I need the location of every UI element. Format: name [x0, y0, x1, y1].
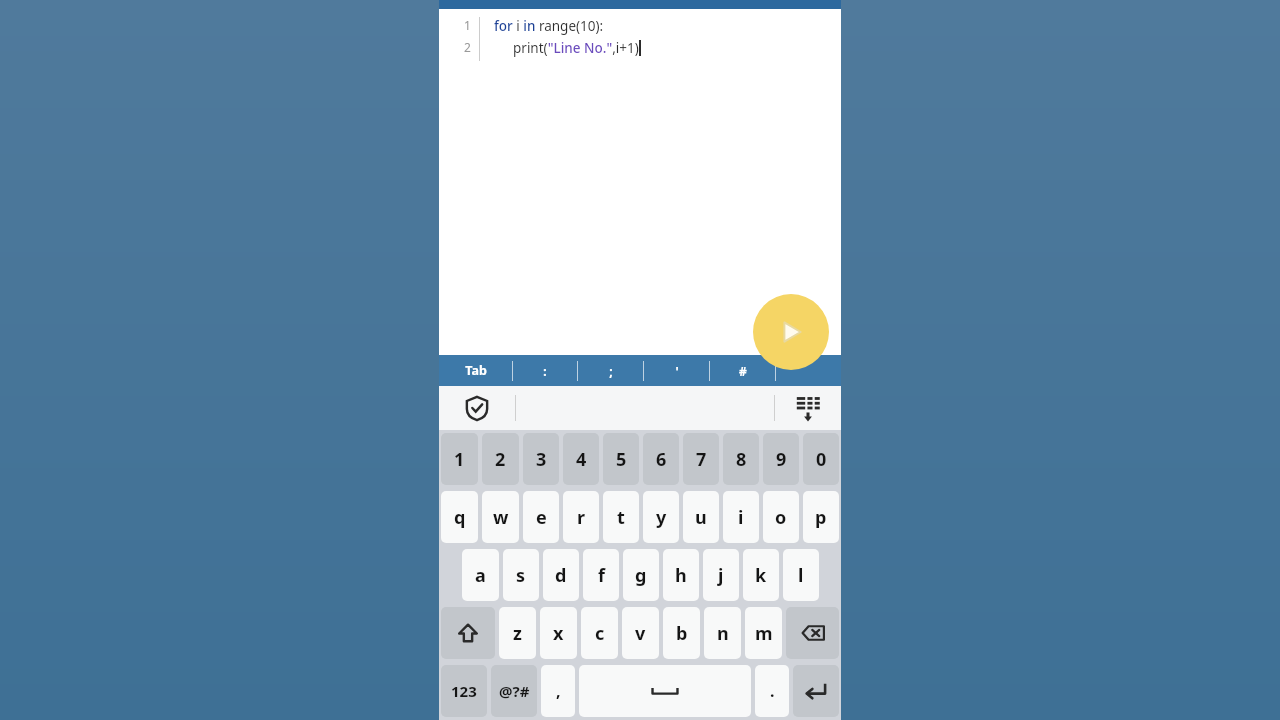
staticText: x — [553, 621, 564, 646]
button[interactable]: k — [743, 549, 779, 601]
button[interactable]: b — [663, 607, 700, 659]
button[interactable]: 9 — [763, 433, 799, 485]
button[interactable]: e — [523, 491, 559, 543]
button[interactable]: Enter — [793, 665, 839, 717]
button[interactable]: n — [704, 607, 741, 659]
staticText: y — [656, 505, 667, 530]
button[interactable]: p — [803, 491, 839, 543]
button[interactable]: Privacy — [439, 386, 515, 430]
button[interactable]: v — [622, 607, 659, 659]
staticText: 9 — [776, 447, 787, 472]
button[interactable] — [776, 355, 841, 386]
staticText: 3 — [536, 447, 547, 472]
button[interactable]: y — [643, 491, 679, 543]
staticText: j — [718, 563, 724, 588]
button[interactable]: z — [499, 607, 536, 659]
button[interactable]: ; — [578, 355, 643, 386]
button[interactable]: Hide keyboard — [775, 386, 841, 430]
staticText: i — [738, 505, 744, 530]
button[interactable]: j — [703, 549, 739, 601]
staticText: t — [617, 505, 625, 530]
button[interactable]: 0 — [803, 433, 839, 485]
staticText: p — [815, 505, 827, 530]
button[interactable]: 3 — [523, 433, 559, 485]
button[interactable]: @?# — [491, 665, 537, 717]
button[interactable]: 4 — [563, 433, 599, 485]
button[interactable]: ' — [644, 355, 709, 386]
staticText: 2 — [495, 447, 506, 472]
button[interactable]: Shift — [441, 607, 495, 659]
staticText: f — [598, 563, 605, 588]
staticText: k — [755, 563, 767, 588]
button[interactable]: c — [581, 607, 618, 659]
button[interactable]: , — [541, 665, 575, 717]
staticText: 1 — [454, 447, 465, 472]
staticText: Tab — [465, 362, 487, 379]
button[interactable]: t — [603, 491, 639, 543]
button[interactable]: w — [482, 491, 519, 543]
staticText: e — [536, 505, 547, 530]
button[interactable]: 1 — [441, 433, 478, 485]
staticText: 8 — [736, 447, 747, 472]
staticText: , — [556, 680, 561, 702]
button[interactable]: 123 — [441, 665, 487, 717]
staticText: g — [635, 563, 647, 588]
button[interactable]: s — [503, 549, 539, 601]
staticText: ; — [609, 363, 613, 379]
button[interactable]: 5 — [603, 433, 639, 485]
staticText: # — [739, 363, 747, 379]
staticText: q — [454, 505, 466, 530]
button[interactable]: a — [462, 549, 499, 601]
button[interactable]: m — [745, 607, 782, 659]
staticText: . — [770, 680, 775, 702]
staticText: z — [513, 621, 522, 646]
button[interactable]: r — [563, 491, 599, 543]
button[interactable]: x — [540, 607, 577, 659]
button[interactable]: g — [623, 549, 659, 601]
staticText: m — [755, 621, 773, 646]
staticText: 123 — [451, 681, 477, 701]
staticText: n — [717, 621, 729, 646]
button[interactable]: Backspace — [786, 607, 839, 659]
button[interactable]: # — [710, 355, 775, 386]
staticText: l — [798, 563, 804, 588]
button[interactable]: o — [763, 491, 799, 543]
staticText: 4 — [576, 447, 587, 472]
button[interactable]: u — [683, 491, 719, 543]
staticText: c — [595, 621, 605, 646]
staticText: 2 — [464, 39, 471, 55]
staticText: for i in range(10): — [494, 17, 604, 35]
staticText: w — [493, 505, 509, 530]
button[interactable]: i — [723, 491, 759, 543]
button[interactable]: 8 — [723, 433, 759, 485]
staticText: 5 — [616, 447, 627, 472]
button[interactable]: f — [583, 549, 619, 601]
staticText: 0 — [816, 447, 827, 472]
button[interactable]: 2 — [482, 433, 519, 485]
button[interactable]: 7 — [683, 433, 719, 485]
staticText: b — [676, 621, 688, 646]
staticText: 6 — [656, 447, 667, 472]
button[interactable]: h — [663, 549, 699, 601]
staticText: a — [475, 563, 486, 588]
button[interactable]: l — [783, 549, 819, 601]
button[interactable]: d — [543, 549, 579, 601]
staticText: v — [635, 621, 646, 646]
button[interactable]: Run — [753, 294, 829, 370]
staticText: s — [516, 563, 526, 588]
button[interactable]: 6 — [643, 433, 679, 485]
staticText: @?# — [499, 681, 530, 701]
button[interactable]: Space — [579, 665, 751, 717]
button[interactable]: Tab — [439, 355, 512, 386]
staticText: : — [543, 363, 547, 379]
staticText: o — [775, 505, 787, 530]
staticText: print("Line No.",i+1) — [513, 39, 639, 57]
staticText: 7 — [696, 447, 707, 472]
button[interactable]: : — [513, 355, 577, 386]
button[interactable]: q — [441, 491, 478, 543]
staticText: r — [577, 505, 586, 530]
button[interactable]: . — [755, 665, 789, 717]
staticText: 1 — [464, 17, 471, 33]
staticText: h — [675, 563, 687, 588]
